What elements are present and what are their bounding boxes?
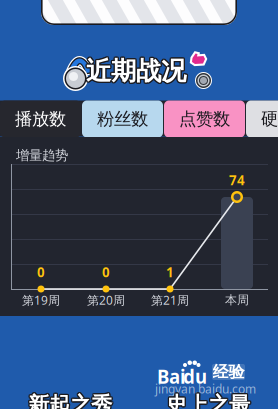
staticText: 本周	[225, 293, 249, 307]
staticText: 新起之秀	[27, 391, 111, 409]
staticText: 新起之秀	[27, 393, 111, 409]
staticText: 0	[37, 263, 45, 281]
staticText: 1	[166, 263, 174, 281]
staticText: 增量趋势	[16, 147, 68, 163]
staticText: du	[183, 364, 207, 389]
staticText: 近期战况	[86, 57, 186, 88]
button[interactable]: 硬币数	[246, 100, 278, 137]
staticText: 0	[102, 263, 110, 281]
staticText: 史上之最	[165, 393, 249, 409]
staticText: 史上之最	[166, 392, 250, 409]
staticText: 近期战况	[87, 55, 187, 86]
staticText: 第21周	[151, 292, 189, 308]
staticText: 史上之最	[166, 391, 250, 409]
staticText: 史上之最	[167, 393, 251, 409]
staticText: 史上之最	[167, 392, 251, 409]
staticText: 新起之秀	[29, 392, 113, 409]
staticText: 新起之秀	[27, 392, 111, 409]
staticText: Bai	[157, 364, 186, 389]
staticText: 播放数	[15, 108, 66, 130]
staticText: 近期战况	[85, 54, 185, 85]
staticText: 近期战况	[85, 56, 185, 87]
button[interactable]: 播放数	[0, 100, 81, 137]
staticText: 史上之最	[165, 392, 249, 409]
button[interactable]: 点赞数	[164, 100, 245, 137]
staticText: 近期战况	[86, 55, 186, 86]
staticText: 新起之秀	[28, 393, 112, 409]
staticText: 近期战况	[86, 54, 186, 85]
staticText: 史上之最	[166, 393, 250, 409]
staticText: 近期战况	[87, 54, 187, 85]
staticText: jingyan.baidu.com	[155, 381, 256, 397]
staticText: 经验	[212, 362, 244, 382]
staticText: 新起之秀	[28, 391, 112, 409]
staticText: 第20周	[87, 292, 125, 308]
staticText: 新起之秀	[29, 393, 113, 409]
staticText: 近期战况	[87, 56, 187, 87]
staticText: 点赞数	[179, 108, 230, 130]
button[interactable]: 粉丝数	[82, 100, 163, 137]
staticText: 新起之秀	[28, 392, 112, 409]
staticText: 近期战况	[85, 55, 185, 86]
staticText: 史上之最	[167, 391, 251, 409]
staticText: 硬币数	[261, 108, 278, 130]
staticText: 史上之最	[165, 391, 249, 409]
staticText: 粉丝数	[97, 108, 148, 130]
staticText: 第19周	[22, 292, 60, 308]
staticText: 新起之秀	[29, 391, 113, 409]
staticText: 74	[229, 171, 245, 189]
